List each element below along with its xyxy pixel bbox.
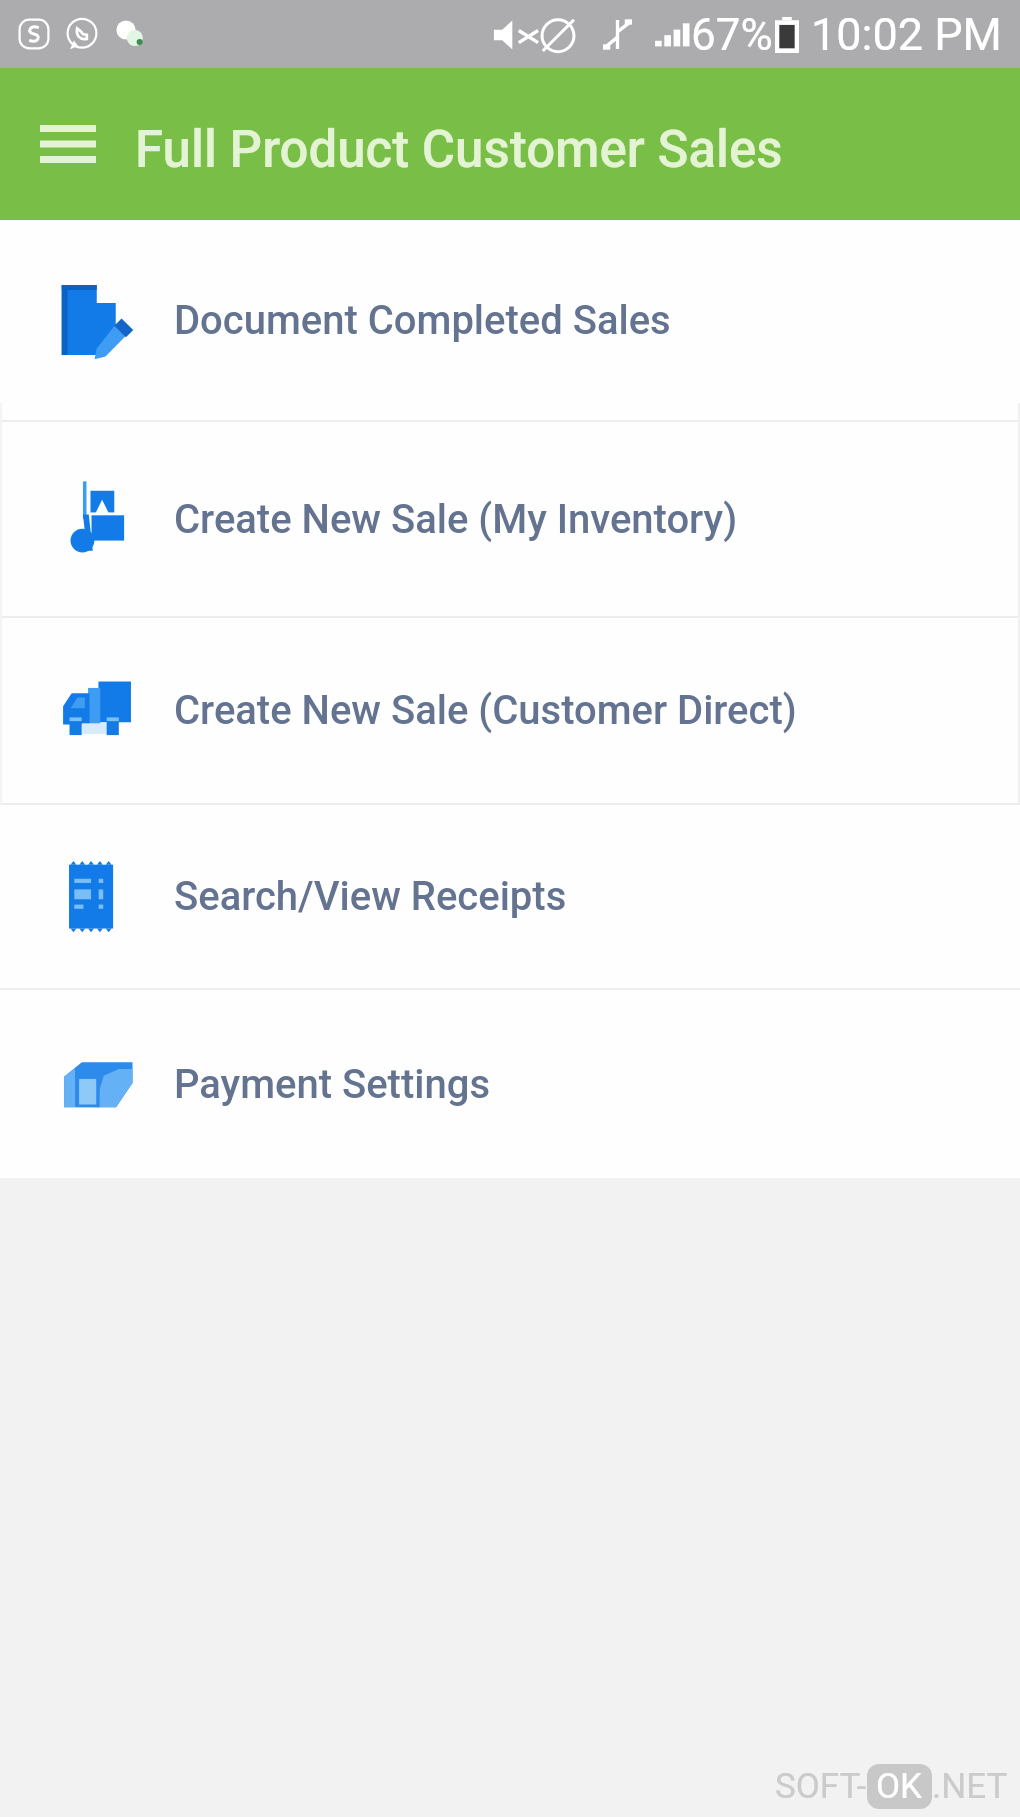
staticText: OK <box>876 1766 923 1807</box>
button[interactable]: Search/View Receipts <box>0 805 1020 988</box>
button[interactable]: Payment Settings <box>0 990 1020 1178</box>
button[interactable]: Document Completed Sales <box>0 220 1020 420</box>
button[interactable]: Create New Sale (My Inventory) <box>0 422 1020 616</box>
staticText: Search/View Receipts <box>174 873 567 920</box>
button[interactable]: Open navigation menu <box>32 108 104 180</box>
staticText: .NET <box>932 1766 1008 1807</box>
staticText: 10:02 PM <box>811 8 1002 61</box>
staticText: Create New Sale (My Inventory) <box>174 496 738 543</box>
staticText: Document Completed Sales <box>174 297 671 344</box>
staticText: SOFT- <box>775 1766 867 1807</box>
staticText: 67% <box>691 9 773 61</box>
staticText: Full Product Customer Sales <box>135 120 783 180</box>
staticText: Create New Sale (Customer Direct) <box>174 687 797 734</box>
staticText: Payment Settings <box>174 1061 490 1108</box>
button[interactable]: Create New Sale (Customer Direct) <box>0 618 1020 803</box>
